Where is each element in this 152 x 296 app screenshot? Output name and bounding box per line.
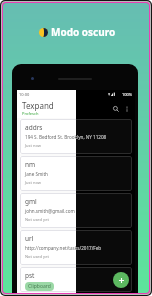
button[interactable]: Add phrase	[113, 272, 129, 288]
button[interactable]: Search	[110, 103, 121, 114]
staticText: gml	[25, 197, 37, 206]
staticText: Modo oscuro	[51, 25, 116, 39]
staticText: 100%	[122, 92, 133, 97]
staticText: Not used yet	[25, 254, 49, 259]
staticText: Profesch	[22, 111, 39, 116]
staticText: pst	[25, 271, 35, 280]
button[interactable]: More options	[121, 103, 132, 114]
staticText: 10:00	[19, 92, 30, 97]
button[interactable]: url	[76, 230, 132, 265]
staticText: http://company.net/tasks/2017/Feb	[25, 245, 102, 251]
staticText: addrs	[25, 123, 43, 132]
staticText: Just now	[25, 143, 41, 148]
button[interactable]: nm	[76, 156, 132, 191]
staticText: Jane Smith	[25, 171, 48, 177]
staticText: Clipboard	[28, 283, 51, 290]
button[interactable]: Add phrase	[113, 272, 129, 288]
staticText: url	[25, 234, 34, 243]
button[interactable]: pst	[20, 267, 132, 292]
staticText: 100%	[122, 92, 133, 97]
button[interactable]: addrs	[76, 119, 132, 154]
button[interactable]: Search	[110, 103, 121, 114]
button[interactable]: More options	[121, 103, 132, 114]
button[interactable]: gml	[76, 193, 132, 228]
staticText: 194 S. Bedford St. Brooklyn, NY 11208	[76, 134, 107, 140]
staticText: 194 S. Bedford St. Brooklyn, NY 11208	[25, 134, 107, 140]
staticText: Texpand	[22, 100, 54, 111]
button[interactable]: nm	[20, 156, 132, 191]
staticText: nm	[25, 160, 36, 169]
staticText: john.smith@gmail.com	[25, 208, 75, 214]
staticText: Not used yet	[25, 217, 49, 222]
button[interactable]: pst	[76, 267, 132, 292]
button[interactable]: addrs	[20, 119, 132, 154]
staticText: Just now	[25, 180, 41, 185]
staticText: http://company.net/tasks/2017/Feb	[76, 245, 102, 251]
button[interactable]: gml	[20, 193, 132, 228]
button[interactable]: url	[20, 230, 132, 265]
